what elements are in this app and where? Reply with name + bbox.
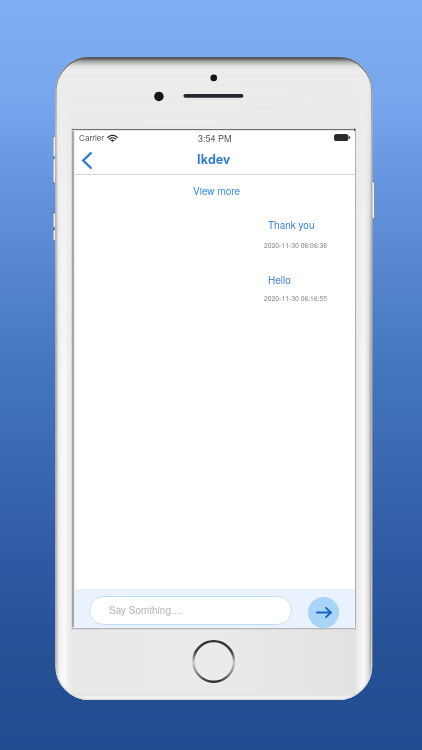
- button[interactable]: Say Somthing....: [89, 596, 292, 625]
- staticText: lkdev: [197, 149, 231, 168]
- staticText: Hello: [268, 273, 291, 287]
- staticText: 2020-11-30 06:16:55: [264, 293, 328, 303]
- staticText: 2020-11-30 06:06:38: [264, 240, 328, 250]
- staticText: Carrier: [79, 132, 105, 144]
- staticText: 3:54 PM: [198, 132, 232, 145]
- button[interactable]: Send: [308, 597, 339, 628]
- staticText: Thank you: [268, 218, 315, 232]
- button[interactable]: View more: [193, 184, 241, 198]
- staticText: Say Somthing....: [109, 603, 183, 617]
- button[interactable]: Back: [75, 145, 105, 174]
